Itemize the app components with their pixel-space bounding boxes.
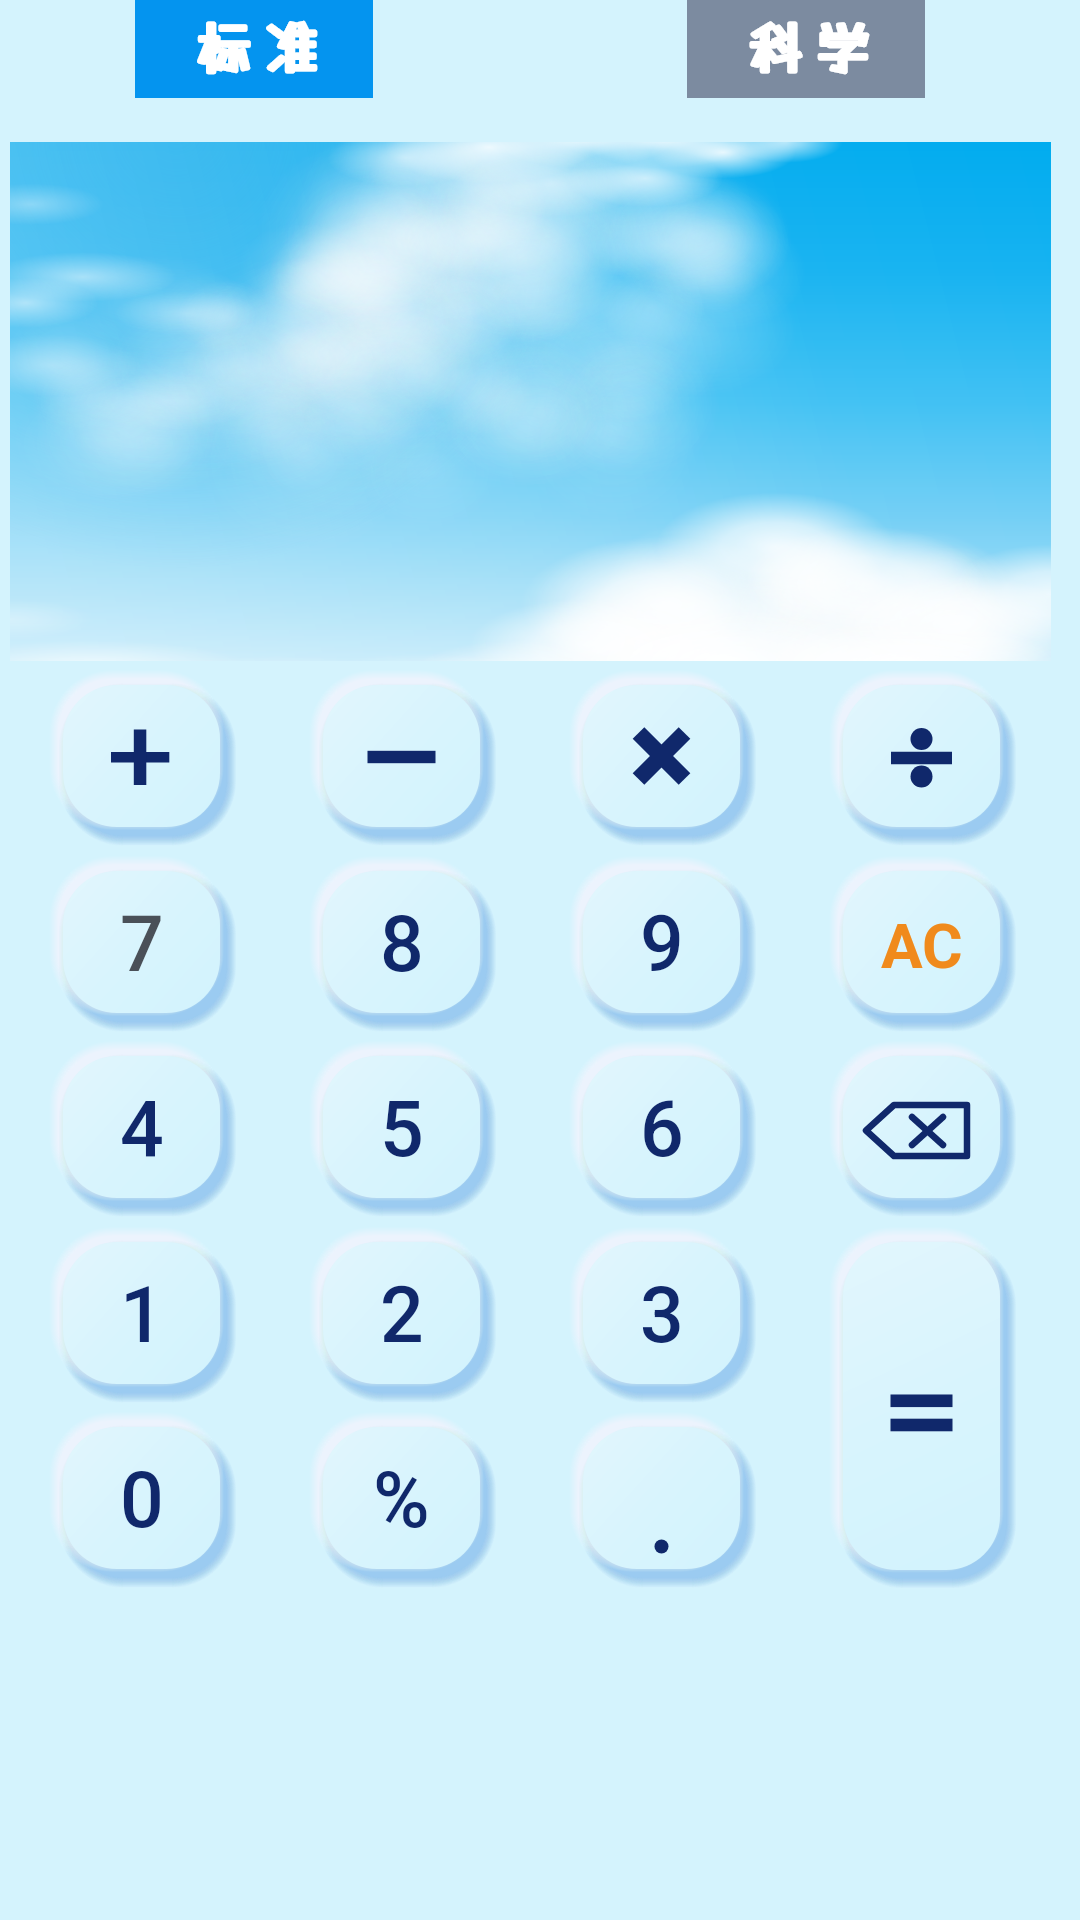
button[interactable]: 6	[583, 1056, 740, 1198]
button[interactable]: Add	[63, 685, 220, 827]
button[interactable]: 0	[63, 1427, 220, 1569]
staticText: 6	[640, 1085, 684, 1175]
button[interactable]: Backspace	[843, 1056, 1000, 1198]
staticText: 科 学	[749, 15, 871, 79]
staticText: 2	[380, 1271, 424, 1361]
button[interactable]: 9	[583, 871, 740, 1013]
button[interactable]: 3	[583, 1242, 740, 1384]
button[interactable]: Multiply	[583, 685, 740, 827]
staticText: 8	[380, 900, 424, 990]
staticText: AC	[881, 910, 963, 983]
staticText: %	[373, 1456, 430, 1546]
button[interactable]: 2	[323, 1242, 480, 1384]
staticText: 1	[120, 1271, 164, 1361]
staticText: 0	[120, 1456, 164, 1546]
button[interactable]: AC	[843, 871, 1000, 1013]
button[interactable]: Subtract	[323, 685, 480, 827]
button[interactable]: 科 学	[687, 0, 925, 98]
staticText: 标 准	[197, 15, 319, 79]
button[interactable]: 1	[63, 1242, 220, 1384]
staticText: 3	[640, 1271, 684, 1361]
button[interactable]: 4	[63, 1056, 220, 1198]
button[interactable]: %	[323, 1427, 480, 1569]
staticText: 科 学	[749, 15, 871, 79]
button[interactable]: 7	[63, 871, 220, 1013]
staticText: 5	[380, 1085, 424, 1175]
button[interactable]: 标 准	[135, 0, 373, 98]
staticText: 7	[120, 900, 164, 990]
staticText: 4	[120, 1085, 164, 1175]
staticText: 9	[640, 900, 684, 990]
button[interactable]: 8	[323, 871, 480, 1013]
staticText: 标 准	[197, 15, 319, 79]
button[interactable]: equals	[843, 1242, 1000, 1570]
button[interactable]: decimal point	[583, 1427, 740, 1569]
button[interactable]: 5	[323, 1056, 480, 1198]
button[interactable]: Divide	[843, 685, 1000, 827]
